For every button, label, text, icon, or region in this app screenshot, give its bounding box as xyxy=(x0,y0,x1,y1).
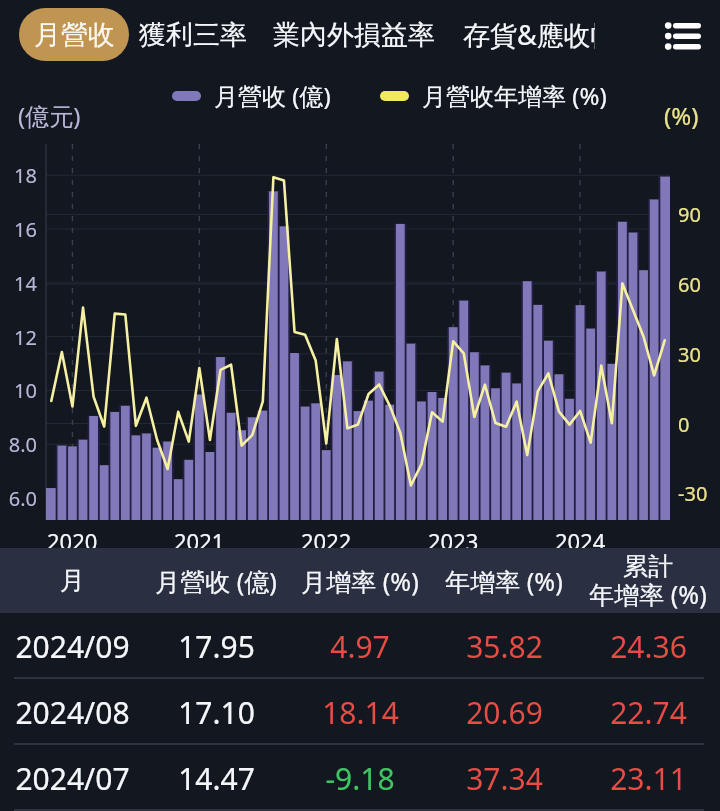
staticText: -30 xyxy=(678,480,708,507)
staticText: 2021 xyxy=(174,526,225,556)
staticText: 90 xyxy=(678,201,701,228)
staticText: 10 xyxy=(14,377,37,404)
staticText: (%) xyxy=(664,99,699,132)
staticText: 月營收 (億) xyxy=(155,564,277,598)
staticText: 20.69 xyxy=(466,692,543,733)
staticText: 2024 xyxy=(555,526,606,556)
staticText: 24.36 xyxy=(610,626,687,667)
button[interactable]: 2024/08 xyxy=(0,679,720,745)
button[interactable]: More options xyxy=(652,10,714,62)
staticText: 14.47 xyxy=(178,758,255,799)
staticText: 12 xyxy=(14,324,37,351)
button[interactable]: 2024/09 xyxy=(0,613,720,679)
staticText: 月營收年增率 (%) xyxy=(422,79,607,112)
staticText: 4.97 xyxy=(330,626,390,667)
staticText: 16 xyxy=(14,216,37,243)
staticText: 2022 xyxy=(301,526,352,556)
button[interactable]: 2024/07 xyxy=(0,745,720,811)
staticText: 0 xyxy=(678,411,690,438)
staticText: 2024/09 xyxy=(15,626,130,667)
staticText: (億元) xyxy=(18,99,81,132)
staticText: 月營收 xyxy=(34,18,115,52)
staticText: 2024/08 xyxy=(15,692,130,733)
staticText: 存貨&應收帳款 xyxy=(463,16,595,53)
staticText: 30 xyxy=(678,341,701,368)
staticText: 35.82 xyxy=(466,626,543,667)
staticText: -9.18 xyxy=(325,758,395,799)
button[interactable]: 獲利三率 xyxy=(135,8,251,61)
staticText: 2023 xyxy=(428,526,479,556)
staticText: 18.14 xyxy=(322,692,399,733)
staticText: 2024/07 xyxy=(15,758,130,799)
staticText: 年增率 (%) xyxy=(445,564,563,598)
staticText: 2020 xyxy=(47,526,98,556)
staticText: 月 xyxy=(60,565,85,596)
staticText: 37.34 xyxy=(466,758,543,799)
button[interactable]: 業內外損益率 xyxy=(269,8,439,61)
staticText: 月增率 (%) xyxy=(301,564,419,598)
staticText: 8.0 xyxy=(8,431,37,458)
staticText: 18 xyxy=(14,162,37,189)
staticText: 6.0 xyxy=(8,485,37,512)
button[interactable]: 存貨&應收帳款 xyxy=(459,8,599,61)
staticText: 獲利三率 xyxy=(139,18,247,52)
staticText: 17.10 xyxy=(178,692,255,733)
staticText: 22.74 xyxy=(610,692,687,733)
staticText: 17.95 xyxy=(178,626,255,667)
staticText: 累計 年增率 (%) xyxy=(589,551,707,611)
staticText: 60 xyxy=(678,271,701,298)
staticText: 14 xyxy=(14,270,37,297)
button[interactable]: 月營收 xyxy=(19,8,129,61)
staticText: 月營收 (億) xyxy=(214,79,331,112)
staticText: 23.11 xyxy=(610,758,687,799)
staticText: 業內外損益率 xyxy=(273,18,435,52)
